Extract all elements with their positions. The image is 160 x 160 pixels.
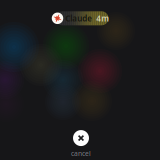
- staticText: cancel: [71, 149, 91, 158]
- button[interactable]: Claude: [55, 11, 108, 25]
- staticText: Claude: [65, 13, 92, 24]
- staticText: 4m: [96, 13, 109, 24]
- button[interactable]: cancel: [71, 130, 91, 158]
